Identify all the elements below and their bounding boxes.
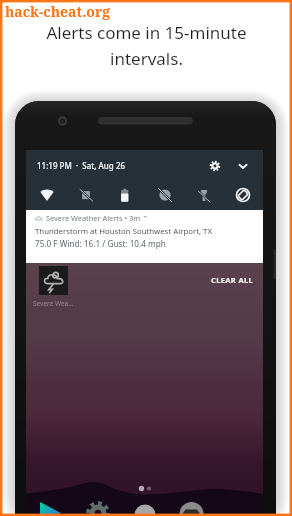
staticText: 11:19 PM · Sat, Aug 26 (37, 160, 126, 171)
button[interactable]: Auto rotate (233, 185, 253, 205)
button[interactable]: Battery saver (115, 185, 135, 205)
button[interactable]: Wi-Fi (37, 185, 57, 205)
button[interactable]: Expand quick settings (236, 159, 250, 173)
button[interactable]: CLEAR ALL (206, 272, 259, 288)
staticText: Alerts come in 15-minute intervals. (46, 21, 247, 70)
staticText: 75.0 F Wind: 16.1 / Gust: 10.4 mph (35, 238, 166, 249)
button[interactable]: Settings (208, 159, 222, 173)
staticText: Thunderstorm at Houston Southwest Airpor… (35, 226, 212, 237)
staticText: Severe Weather Alerts • 3m ⌃ (46, 213, 149, 223)
staticText: CLEAR ALL (211, 275, 254, 285)
button[interactable]: Do not disturb (155, 185, 175, 205)
button[interactable]: Mobile data (76, 185, 96, 205)
button[interactable]: Severe Wea... (25, 266, 81, 308)
button[interactable] (26, 210, 263, 263)
staticText: Severe Wea... (33, 299, 74, 308)
staticText: hack-cheat.org (5, 2, 111, 21)
button[interactable]: Flashlight (194, 185, 214, 205)
